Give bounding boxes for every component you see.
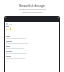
- button[interactable]: [5, 50, 59, 55]
- button[interactable]: [5, 45, 59, 50]
- staticText: Delightful components and polished inter…: [19, 8, 46, 14]
- button[interactable]: [5, 35, 59, 40]
- button[interactable]: [5, 55, 59, 60]
- button[interactable]: App bar: [5, 17, 59, 22]
- button[interactable]: [5, 40, 59, 45]
- staticText: Beautiful design: [19, 3, 45, 7]
